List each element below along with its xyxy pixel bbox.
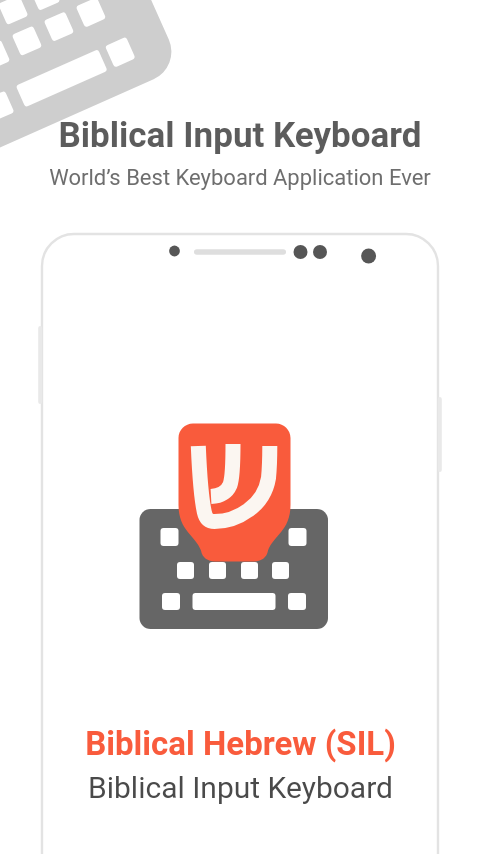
staticText: Biblical Hebrew (SIL) xyxy=(85,724,396,763)
staticText: Biblical Input Keyboard xyxy=(88,770,393,805)
staticText: Biblical Input Keyboard xyxy=(58,115,422,156)
staticText: World’s Best Keyboard Application Ever xyxy=(49,165,431,191)
